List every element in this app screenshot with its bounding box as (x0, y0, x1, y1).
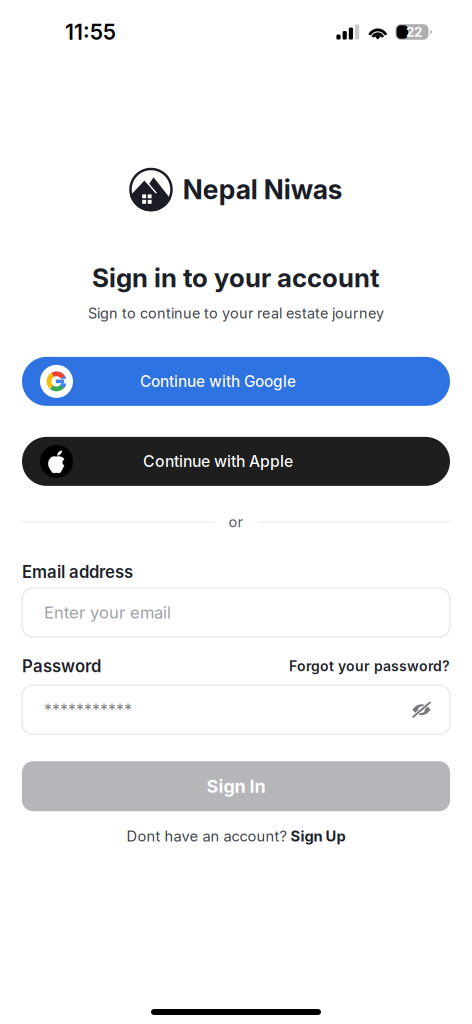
staticText: Email address (22, 562, 133, 582)
button[interactable]: Sign In (22, 761, 450, 811)
button[interactable]: Forgot your password? (289, 658, 450, 675)
button[interactable]: Hide password (412, 701, 431, 719)
staticText: Continue with Apple (143, 452, 293, 471)
staticText: Sign Up (290, 827, 345, 845)
staticText: Sign In (206, 775, 265, 797)
staticText: Forgot your password? (289, 658, 450, 675)
staticText: Password (22, 656, 101, 676)
staticText: 11:55 (65, 19, 116, 45)
staticText: 22 (406, 24, 422, 40)
staticText: Sign to continue to your real estate jou… (88, 304, 384, 322)
button[interactable]: Sign Up (290, 827, 345, 845)
staticText: Nepal Niwas (183, 173, 343, 206)
staticText: Sign in to your account (92, 262, 380, 293)
staticText: or (228, 513, 243, 531)
staticText: Enter your email (44, 602, 171, 622)
staticText: Continue with Google (140, 372, 296, 391)
staticText: Dont have an account? (126, 827, 286, 845)
button[interactable]: Continue with Google (22, 357, 450, 406)
staticText: *********** (44, 700, 132, 719)
button[interactable]: Continue with Apple (22, 437, 450, 486)
